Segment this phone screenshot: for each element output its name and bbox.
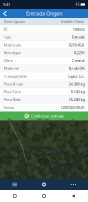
staticText: 12/07/24 09:41	[60, 105, 84, 110]
staticText: Obra	[3, 58, 12, 63]
staticText: Peso Bruto	[3, 81, 22, 87]
staticText: Entrada Origen	[26, 10, 62, 17]
staticText: Matricula	[3, 42, 20, 47]
staticText: Descripcion	[3, 19, 24, 24]
button[interactable]: Peso Tara	[0, 88, 88, 96]
button[interactable]: Home	[29, 190, 59, 202]
staticText: Arido 0/6	[68, 66, 84, 71]
button[interactable]: Tipo	[0, 33, 88, 41]
button[interactable]: Peso Neto	[0, 96, 88, 104]
staticText: ID	[3, 26, 7, 32]
staticText: Remolque	[3, 50, 20, 55]
button[interactable]: List	[0, 179, 29, 190]
button[interactable]: ID	[0, 25, 88, 33]
staticText: Lopez S.L.	[67, 73, 84, 79]
staticText: 4G	[75, 3, 79, 6]
button[interactable]: Transportista	[0, 72, 88, 80]
button[interactable]: Confirmar entrada	[0, 111, 88, 120]
button[interactable]: Material	[0, 65, 88, 72]
staticText: 24.380 kg	[68, 81, 84, 87]
button[interactable]: More	[59, 179, 88, 190]
button[interactable]: Back	[0, 9, 10, 18]
staticText: Central	[71, 58, 84, 63]
staticText: Fecha	[3, 105, 13, 110]
staticText: 9:41	[3, 2, 10, 7]
staticText: Tipo	[3, 34, 10, 40]
staticText: 16.240 kg	[68, 97, 84, 102]
staticText: Material	[3, 66, 18, 71]
button[interactable]: Fecha	[0, 104, 88, 111]
button[interactable]: Obra	[0, 57, 88, 65]
staticText: 184502	[72, 26, 84, 32]
staticText: 8.140 kg	[70, 89, 84, 94]
staticText: Peso Neto	[3, 97, 20, 102]
button[interactable]: Peso Bruto	[0, 80, 88, 88]
button[interactable]: Map	[29, 179, 59, 190]
staticText: R-2291	[73, 50, 84, 55]
staticText: Peso Tara	[3, 89, 20, 94]
staticText: Transportista	[3, 73, 26, 79]
staticText: Confirmar entrada	[30, 113, 63, 119]
button[interactable]: Back	[59, 190, 88, 202]
staticText: Entrada	[71, 34, 84, 40]
button[interactable]: Recent apps	[0, 190, 29, 202]
button[interactable]: Matricula	[0, 41, 88, 49]
button[interactable]: Remolque	[0, 49, 88, 57]
staticText: 8274 KLB	[68, 42, 84, 47]
staticText: Detalle / Valor	[60, 19, 84, 24]
